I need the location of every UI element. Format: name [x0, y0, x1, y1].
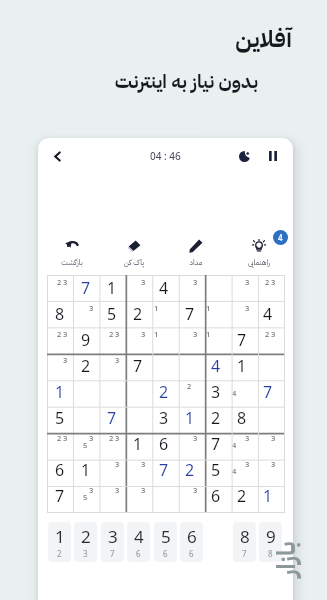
- button[interactable]: 1: [99, 275, 125, 301]
- staticText: 1: [55, 525, 65, 548]
- button[interactable]: 1: [47, 379, 73, 405]
- button[interactable]: 4: [229, 379, 255, 405]
- button[interactable]: 2: [177, 457, 203, 483]
- button[interactable]: 4: [203, 353, 229, 379]
- button[interactable]: 7: [203, 431, 229, 457]
- button[interactable]: 8: [233, 522, 256, 562]
- button[interactable]: [151, 483, 177, 509]
- button[interactable]: [73, 405, 99, 431]
- button[interactable]: بازگشت: [48, 238, 96, 268]
- button[interactable]: [99, 379, 125, 405]
- button[interactable]: 4: [255, 301, 281, 327]
- button[interactable]: 2: [74, 522, 97, 562]
- button[interactable]: 3: [99, 457, 125, 483]
- button[interactable]: 5: [154, 522, 177, 562]
- staticText: 8: [240, 525, 250, 548]
- button[interactable]: 3: [73, 431, 99, 457]
- button[interactable]: [73, 379, 99, 405]
- button[interactable]: 1: [151, 301, 177, 327]
- button[interactable]: 3: [255, 431, 281, 457]
- button[interactable]: 7: [73, 275, 99, 301]
- button[interactable]: 2: [229, 483, 255, 509]
- button[interactable]: 4: [127, 522, 150, 562]
- button[interactable]: 3: [177, 327, 203, 353]
- button[interactable]: 6: [180, 522, 203, 562]
- button[interactable]: [125, 379, 151, 405]
- button[interactable]: [255, 405, 281, 431]
- button[interactable]: 1: [125, 431, 151, 457]
- button[interactable]: 3: [229, 275, 255, 301]
- button[interactable]: 3: [125, 457, 151, 483]
- button[interactable]: 2: [203, 405, 229, 431]
- button[interactable]: [203, 275, 229, 301]
- button[interactable]: 2: [151, 379, 177, 405]
- button[interactable]: [177, 353, 203, 379]
- button[interactable]: 2: [47, 327, 73, 353]
- button[interactable]: 6: [203, 483, 229, 509]
- button[interactable]: 4: [151, 275, 177, 301]
- button[interactable]: 3: [73, 483, 99, 509]
- button[interactable]: 1: [177, 405, 203, 431]
- button[interactable]: 1: [48, 522, 71, 562]
- button[interactable]: 2: [47, 275, 73, 301]
- button[interactable]: 1: [203, 301, 229, 327]
- button[interactable]: 2: [255, 327, 281, 353]
- button[interactable]: 3: [99, 353, 125, 379]
- button[interactable]: Pause: [264, 147, 282, 165]
- button[interactable]: [125, 405, 151, 431]
- button[interactable]: 3: [125, 275, 151, 301]
- staticText: 3: [115, 485, 120, 494]
- button[interactable]: 3: [73, 301, 99, 327]
- button[interactable]: 7: [47, 483, 73, 509]
- button[interactable]: Night mode: [235, 147, 253, 165]
- button[interactable]: 2: [99, 431, 125, 457]
- button[interactable]: 3: [99, 483, 125, 509]
- button[interactable]: 3: [229, 301, 255, 327]
- button[interactable]: 7: [151, 457, 177, 483]
- button[interactable]: Back: [46, 145, 68, 167]
- button[interactable]: مداد: [172, 238, 220, 268]
- button[interactable]: 7: [99, 405, 125, 431]
- button[interactable]: 1: [203, 327, 229, 353]
- button[interactable]: 3: [177, 275, 203, 301]
- button[interactable]: 3: [177, 483, 203, 509]
- button[interactable]: 9: [73, 327, 99, 353]
- button[interactable]: 2: [255, 275, 281, 301]
- button[interactable]: 3: [177, 431, 203, 457]
- button[interactable]: 3: [151, 405, 177, 431]
- button[interactable]: 7: [255, 379, 281, 405]
- button[interactable]: 3: [255, 457, 281, 483]
- button[interactable]: 3: [229, 457, 255, 483]
- button[interactable]: 3: [125, 483, 151, 509]
- button[interactable]: 8: [47, 301, 73, 327]
- button[interactable]: 1: [255, 483, 281, 509]
- button[interactable]: 5: [47, 405, 73, 431]
- button[interactable]: 6: [47, 457, 73, 483]
- button[interactable]: 1: [73, 457, 99, 483]
- button[interactable]: 3: [229, 431, 255, 457]
- button[interactable]: 3: [125, 327, 151, 353]
- button[interactable]: 3: [203, 379, 229, 405]
- button[interactable]: 7: [125, 353, 151, 379]
- staticText: 2: [159, 381, 169, 403]
- button[interactable]: [151, 353, 177, 379]
- button[interactable]: 1: [229, 353, 255, 379]
- button[interactable]: 7: [229, 327, 255, 353]
- button[interactable]: 3: [101, 522, 124, 562]
- button[interactable]: 2: [125, 301, 151, 327]
- button[interactable]: پاک کن: [110, 238, 158, 268]
- button[interactable]: 2: [177, 379, 203, 405]
- button[interactable]: 7: [177, 301, 203, 327]
- button[interactable]: 6: [151, 431, 177, 457]
- button[interactable]: 3: [47, 353, 73, 379]
- button[interactable]: [255, 353, 281, 379]
- button[interactable]: 2: [73, 353, 99, 379]
- button[interactable]: 5: [99, 301, 125, 327]
- button[interactable]: 8: [229, 405, 255, 431]
- button[interactable]: 5: [203, 457, 229, 483]
- button[interactable]: راهنمایی: [235, 238, 283, 268]
- button[interactable]: 2: [99, 327, 125, 353]
- button[interactable]: 2: [47, 431, 73, 457]
- button[interactable]: 1: [151, 327, 177, 353]
- button[interactable]: 9: [259, 522, 282, 562]
